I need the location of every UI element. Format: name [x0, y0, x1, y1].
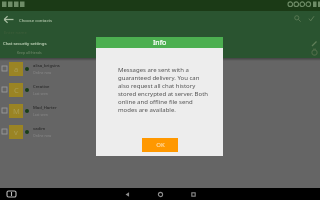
staticText: vadim [33, 126, 46, 132]
staticText: Last seen [33, 91, 48, 96]
button[interactable]: Recents [186, 188, 200, 200]
button[interactable]: v [0, 121, 320, 142]
staticText: Enter name [4, 30, 27, 36]
button[interactable]: Home [153, 188, 167, 200]
button[interactable]: C [0, 79, 320, 100]
staticText: C [14, 85, 19, 95]
button[interactable]: Back [0, 11, 17, 28]
button[interactable]: Search [290, 11, 304, 25]
button[interactable]: OK [142, 138, 178, 152]
staticText: Mad_Harter [33, 105, 57, 111]
button[interactable]: Done [304, 11, 318, 25]
staticText: Chat security settings [3, 40, 47, 46]
staticText: alisa_brigsins [33, 63, 60, 69]
staticText: v [14, 127, 18, 137]
staticText: a [14, 64, 19, 74]
staticText: Online now [33, 133, 52, 138]
button[interactable]: a [0, 58, 320, 79]
button[interactable]: Back [120, 188, 134, 200]
staticText: Info [153, 38, 167, 48]
staticText: M [13, 106, 20, 116]
button[interactable]: M [0, 100, 320, 121]
staticText: Messages are sent with a guaranteed deli… [118, 66, 210, 114]
staticText: Online now [33, 70, 52, 75]
staticText: OK [156, 141, 165, 149]
staticText: Last seen [33, 112, 48, 117]
staticText: Keep all friends [17, 50, 42, 55]
staticText: Creative [33, 84, 50, 90]
staticText: Choose contacts [19, 17, 53, 23]
